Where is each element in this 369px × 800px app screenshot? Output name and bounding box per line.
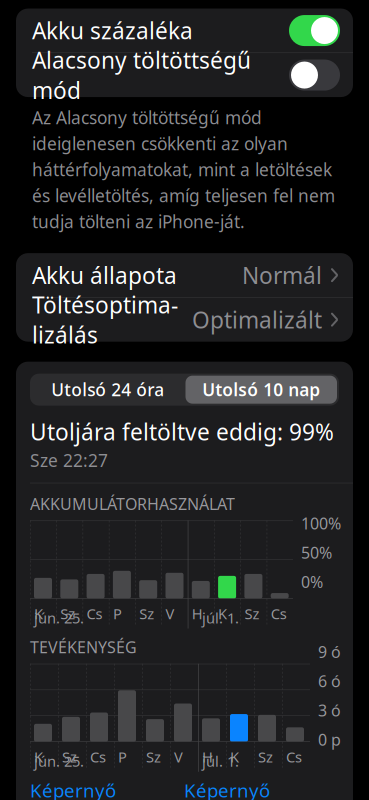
staticText: Sz [258,747,273,766]
staticText: Cs [286,747,302,766]
staticText: 0 p [318,729,341,750]
staticText: 6 ó [318,670,341,692]
staticText: V [165,604,174,623]
staticText: K [218,604,227,623]
staticText: H [202,747,213,766]
staticText: Képernyő bekapcsolva [30,778,136,800]
staticText: 9 ó [318,641,341,662]
staticText: Sz [60,604,75,623]
staticText: 50% [301,542,332,563]
staticText: H [192,604,203,623]
staticText: Sz [139,604,154,623]
staticText: Sz [62,747,77,766]
button[interactable]: Utolsó 24 óra [32,376,183,404]
staticText: Cs [271,604,287,623]
staticText: P [113,604,122,623]
staticText: Alacsony töltöttségű mód [32,45,251,105]
staticText: Cs [90,747,106,766]
button[interactable]: Akku százaléka [16,9,353,53]
staticText: Utolsó 10 nap [202,378,320,401]
staticText: júl. 1. [202,751,239,771]
button[interactable]: Töltésoptimalizálás [16,298,353,342]
staticText: jún. 25. [34,751,84,771]
staticText: TEVÉKENYSÉG [30,636,137,658]
staticText: P [118,747,127,766]
staticText: Akku állapota [32,260,177,290]
staticText: V [174,747,183,766]
staticText: Töltésoptimalizálás [32,289,178,350]
staticText: K [34,747,43,766]
staticText: jún. 25. [34,608,84,627]
staticText: K [230,747,239,766]
staticText: 100% [301,513,341,534]
staticText: Optimalizált [192,305,322,335]
staticText: Normál [242,260,322,290]
staticText: 3 ó [318,700,341,721]
staticText: AKKUMULÁTORHASZNÁLAT [30,493,235,514]
staticText: Sze 22:27 [30,449,108,472]
staticText: 0% [301,571,323,592]
staticText: Akku százaléka [32,15,193,46]
staticText: Cs [87,604,103,623]
staticText: K [34,604,43,623]
staticText: júl. 1. [202,608,239,627]
button[interactable]: Alacsony töltöttségű mód [16,53,353,97]
staticText: Utoljára feltöltve eddig: 99% [30,417,334,447]
staticText: Sz [244,604,259,623]
staticText: Sz [146,747,161,766]
staticText: Képernyő kikapcsolva [184,778,283,800]
staticText: Az Alacsony töltöttségű mód ideiglenesen… [32,106,335,233]
button[interactable]: Utolsó 10 nap [185,376,337,404]
button[interactable]: Akku állapota [16,253,353,297]
staticText: Utolsó 24 óra [51,378,164,401]
